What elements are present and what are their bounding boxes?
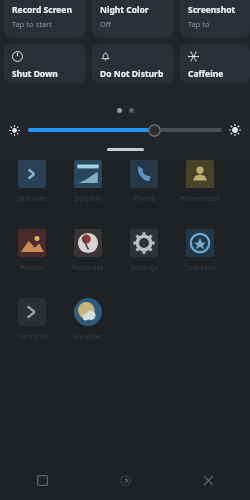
button[interactable]: Weather: [64, 298, 112, 341]
button[interactable]: Discover: [8, 160, 56, 203]
button[interactable]: Settings: [120, 229, 168, 272]
button[interactable]: Phonebook: [176, 160, 224, 203]
button[interactable]: [28, 119, 222, 141]
other: Increase brightness: [229, 124, 241, 136]
staticText: Record Screen: [12, 4, 72, 16]
staticText: Caffeine: [188, 68, 224, 77]
button[interactable]: Recorder: [64, 229, 112, 272]
staticText: Shut Down: [12, 68, 58, 77]
button[interactable]: Dolphin: [64, 160, 112, 203]
staticText: Terminal: [17, 331, 48, 341]
staticText: Do Not Disturb: [100, 68, 164, 77]
staticText: Phone: [133, 193, 156, 203]
other: Decrease brightness: [9, 125, 20, 136]
staticText: Tap to screenshot: [188, 19, 246, 29]
staticText: Tap to start recording: [12, 19, 82, 29]
button[interactable]: Night Color: [92, 0, 174, 38]
staticText: Discover: [17, 193, 48, 203]
staticText: Recorder: [72, 262, 104, 272]
staticText: Screenshot: [188, 4, 236, 16]
button[interactable]: Recents: [0, 460, 84, 500]
button[interactable]: Phone: [120, 160, 168, 203]
button[interactable]: Spacebar: [176, 229, 224, 272]
button[interactable]: Photos: [8, 229, 56, 272]
staticText: Settings: [130, 262, 159, 272]
staticText: Phonebook: [180, 193, 221, 203]
button[interactable]: Shut Down: [4, 44, 86, 83]
staticText: Photos: [20, 262, 45, 272]
button[interactable]: Home: [84, 460, 167, 500]
button[interactable]: Screenshot: [180, 0, 250, 38]
button[interactable]: Caffeine: [180, 44, 250, 83]
button[interactable]: Record Screen: [4, 0, 86, 38]
staticText: Dolphin: [74, 193, 102, 203]
staticText: Night Color: [100, 4, 149, 16]
button[interactable]: Do Not Disturb: [92, 44, 174, 83]
staticText: Off: [100, 19, 112, 29]
button[interactable]: Terminal: [8, 298, 56, 341]
staticText: Spacebar: [184, 262, 217, 272]
button[interactable]: Back: [167, 460, 250, 500]
staticText: Weather: [73, 331, 103, 341]
